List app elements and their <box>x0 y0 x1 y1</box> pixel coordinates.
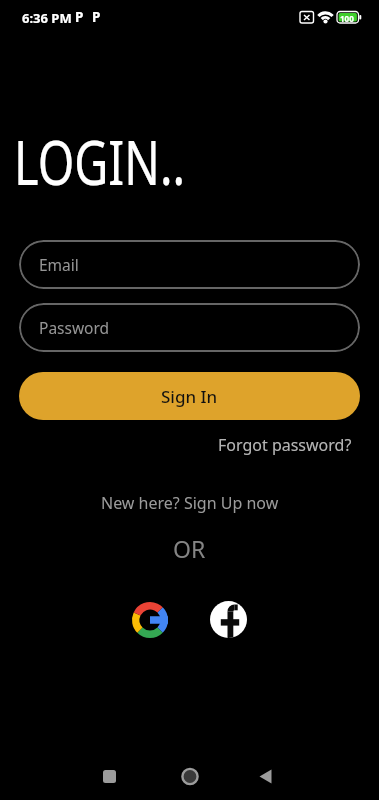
staticText: P <box>92 8 101 26</box>
button[interactable] <box>175 762 204 791</box>
button[interactable]: Sign In <box>19 372 360 420</box>
button[interactable] <box>132 602 168 638</box>
staticText: Password <box>39 317 110 338</box>
staticText: Sign In <box>161 385 218 408</box>
button[interactable] <box>251 762 280 791</box>
staticText: P <box>75 8 84 26</box>
staticText: OR <box>173 533 206 564</box>
button[interactable] <box>210 601 247 638</box>
button[interactable]: Email <box>19 240 360 289</box>
button[interactable]: Password <box>19 303 360 352</box>
staticText: 100 <box>340 13 354 24</box>
button[interactable]: Forgot password? <box>218 434 352 456</box>
staticText: Email <box>39 254 79 275</box>
staticText: LOGIN.. <box>14 118 185 203</box>
staticText: 6:36 PM <box>22 9 72 27</box>
button[interactable] <box>95 762 124 791</box>
button[interactable]: New here? Sign Up now <box>101 492 279 514</box>
